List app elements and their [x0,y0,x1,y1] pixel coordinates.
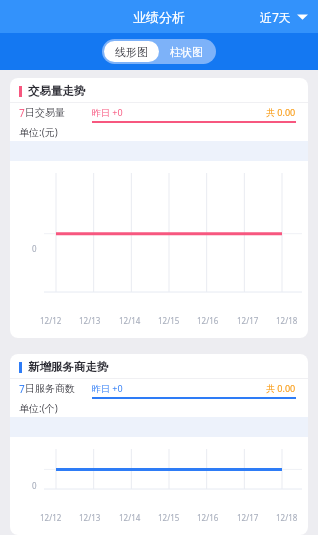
staticText: 0 [32,243,37,254]
staticText: 12/12 [40,512,62,523]
staticText: 12/16 [197,512,219,523]
staticText: 12/12 [40,315,62,326]
staticText: 12/18 [276,315,298,326]
staticText: 12/15 [158,315,180,326]
button[interactable]: 交易量走势 [10,78,308,338]
staticText: 共 0.00 [266,106,296,118]
staticText: 昨日 +0 [92,106,123,118]
staticText: 12/17 [237,512,259,523]
staticText: 12/13 [79,315,101,326]
staticText: 12/14 [119,512,141,523]
staticText: 12/14 [119,315,141,326]
staticText: 柱状图 [170,45,203,59]
staticText: 共 0.00 [266,382,296,394]
staticText: 业绩分析 [133,9,185,25]
button[interactable]: 新增服务商走势 [10,354,308,535]
button[interactable]: 线形图 [104,41,159,62]
staticText: 7 [19,106,25,120]
staticText: 日交易量 [25,106,65,119]
staticText: 12/17 [237,315,259,326]
staticText: 12/13 [79,512,101,523]
staticText: 线形图 [115,45,148,59]
staticText: 交易量走势 [28,84,86,98]
staticText: 12/16 [197,315,219,326]
staticText: 0 [32,480,37,491]
staticText: 新增服务商走势 [28,360,109,374]
button[interactable]: 近7天 [260,9,308,25]
staticText: 日服务商数 [25,382,75,395]
staticText: 12/18 [276,512,298,523]
staticText: 单位:(元) [19,125,58,139]
button[interactable]: 柱状图 [159,41,214,62]
staticText: 单位:(个) [19,401,58,415]
staticText: 7 [19,382,25,396]
staticText: 昨日 +0 [92,382,123,394]
staticText: 12/15 [158,512,180,523]
staticText: 近7天 [260,9,291,25]
